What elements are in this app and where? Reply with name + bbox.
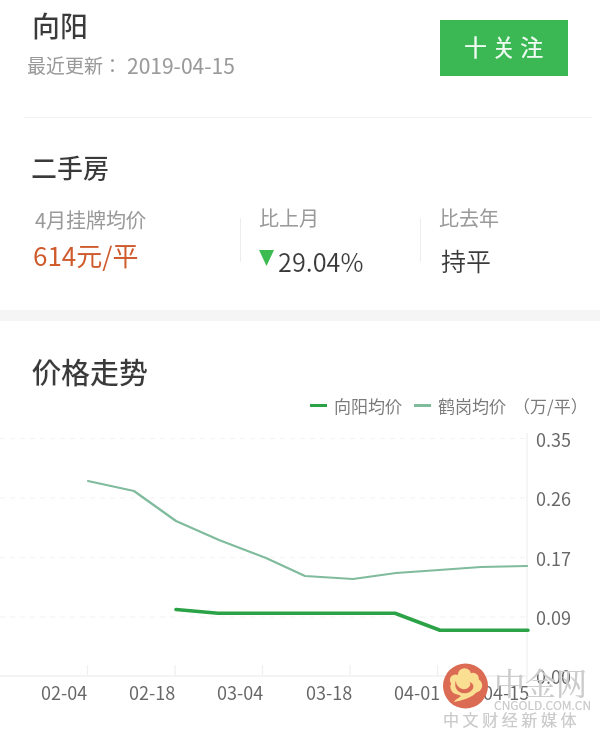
staticText: 0.17 (536, 545, 571, 571)
staticText: 向阳均价 (334, 393, 402, 418)
staticText: 0.09 (536, 604, 571, 630)
staticText: 持平 (441, 242, 492, 278)
staticText: 02-18 (129, 679, 176, 705)
staticText: 中 文 财 经 新 媒 体 (443, 707, 577, 730)
staticText: 29.04% (278, 243, 364, 279)
staticText: 03-18 (306, 679, 353, 705)
staticText: 向阳 (32, 5, 89, 46)
staticText: 0.26 (536, 485, 571, 511)
staticText: 鹤岗均价 (438, 393, 506, 418)
staticText: 比上月 (259, 203, 319, 232)
staticText: （万/平） (513, 393, 588, 418)
staticText: 0.00 (536, 663, 571, 689)
staticText: 最近更新： (27, 51, 123, 79)
staticText: CNGOLD.COM.CN (494, 696, 592, 713)
staticText: 0.35 (536, 426, 571, 452)
staticText: 04-01 (394, 679, 441, 705)
staticText: 价格走势 (32, 350, 149, 392)
staticText: 03-04 (217, 679, 264, 705)
staticText: 2019-04-15 (127, 50, 235, 80)
staticText: 04-15 (483, 679, 530, 705)
staticText: 比去年 (439, 203, 499, 232)
staticText: 中金网 (494, 659, 587, 704)
staticText: 二手房 (31, 148, 110, 186)
staticText: 4月挂牌均价 (35, 205, 147, 234)
button[interactable]: 十 关 注 (440, 20, 568, 76)
staticText: 02-04 (41, 679, 88, 705)
staticText: 614元/平 (33, 236, 139, 274)
staticText: 十 关 注 (464, 29, 544, 62)
